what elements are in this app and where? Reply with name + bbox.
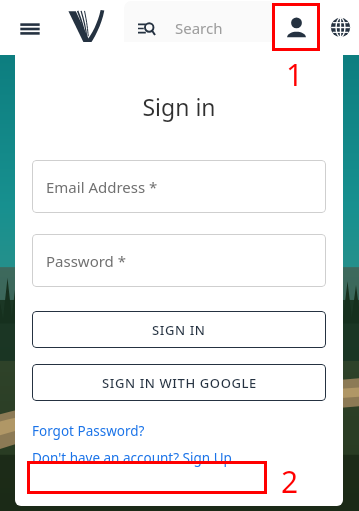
staticText: 1 [286,54,304,95]
button[interactable]: Language [322,9,358,45]
button[interactable]: Don't have an account? Sign Up [32,448,232,468]
button[interactable]: Forgot Password? [32,421,145,441]
button[interactable]: Password * [32,234,326,287]
button[interactable]: SIGN IN [32,311,326,348]
staticText: 2 [281,461,299,502]
button[interactable]: Home [62,4,108,50]
staticText: SIGN IN [152,321,206,339]
button[interactable]: Search [124,1,274,55]
staticText: Don't have an account? Sign Up [32,449,232,467]
button[interactable]: Menu [14,13,46,45]
staticText: Sign in [15,91,343,122]
staticText: Password * [46,251,127,271]
staticText: Forgot Password? [32,422,145,440]
button[interactable]: Email Address * [32,160,326,213]
button[interactable]: SIGN IN WITH GOOGLE [32,364,326,401]
staticText: Email Address * [46,177,158,197]
staticText: Search [175,18,223,38]
button[interactable]: Account [274,5,318,49]
staticText: SIGN IN WITH GOOGLE [102,374,257,392]
